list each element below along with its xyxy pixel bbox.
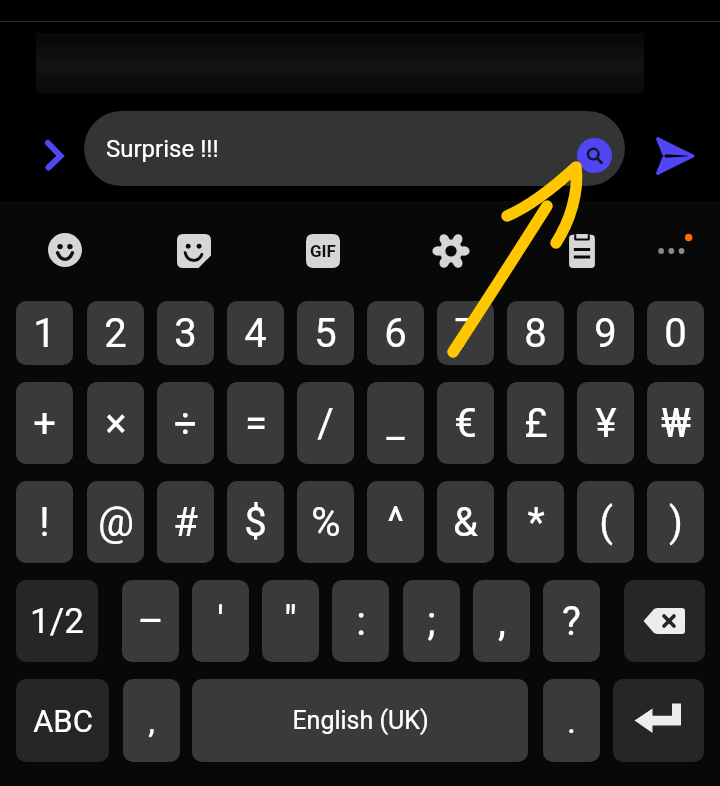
button[interactable]: €	[437, 382, 494, 464]
button[interactable]: _	[367, 382, 424, 464]
button[interactable]: #	[157, 481, 214, 563]
button[interactable]: @	[87, 481, 144, 563]
staticText: ^	[387, 499, 404, 546]
staticText: 0	[664, 310, 687, 357]
button[interactable]: ;	[403, 580, 460, 662]
button[interactable]: ,	[123, 679, 180, 762]
staticText: (	[599, 499, 613, 546]
staticText: English (UK)	[292, 706, 429, 735]
button[interactable]: Clipboard	[557, 226, 607, 276]
button[interactable]: GIF	[298, 226, 348, 276]
staticText: 5	[314, 310, 337, 357]
button[interactable]: 6	[367, 301, 424, 365]
staticText: ,	[498, 598, 506, 645]
staticText: _	[386, 400, 405, 447]
staticText: .	[567, 701, 576, 741]
staticText: £	[524, 400, 548, 447]
staticText: 3	[174, 310, 197, 357]
staticText: ×	[105, 400, 127, 447]
staticText: ¥	[595, 400, 617, 447]
button[interactable]: Settings	[426, 226, 476, 276]
button[interactable]: %	[297, 481, 354, 563]
button[interactable]: ,	[473, 580, 530, 662]
staticText: GIF	[310, 241, 336, 261]
button[interactable]: /	[297, 382, 354, 464]
staticText: ?	[562, 598, 581, 645]
button[interactable]: Expand toolbar	[32, 132, 78, 178]
staticText: %	[311, 499, 341, 546]
staticText: "	[284, 598, 297, 645]
staticText: 6	[384, 310, 407, 357]
button[interactable]: 8	[507, 301, 564, 365]
button[interactable]: Backspace	[624, 580, 705, 662]
staticText: '	[217, 598, 224, 645]
staticText: ABC	[33, 703, 93, 739]
staticText: Surprise !!!	[106, 135, 219, 163]
staticText: #	[173, 499, 198, 546]
button[interactable]: ¥	[577, 382, 634, 464]
button[interactable]: ÷	[157, 382, 214, 464]
staticText: $	[244, 499, 267, 546]
button[interactable]: &	[437, 481, 494, 563]
button[interactable]: English (UK)	[192, 679, 528, 762]
staticText: 1/2	[30, 601, 84, 642]
button[interactable]: Enter	[613, 679, 704, 762]
button[interactable]: :	[332, 580, 389, 662]
staticText: 8	[524, 310, 547, 357]
button[interactable]: .	[543, 679, 600, 762]
button[interactable]: Surprise !!!	[84, 111, 625, 186]
staticText: ₩	[661, 400, 691, 447]
staticText: 1	[33, 310, 56, 357]
staticText: !	[39, 499, 50, 546]
button[interactable]: !	[16, 481, 73, 563]
staticText: 7	[454, 310, 477, 357]
button[interactable]: 5	[297, 301, 354, 365]
button[interactable]: "	[262, 580, 319, 662]
staticText: :	[356, 598, 366, 645]
button[interactable]: ?	[543, 580, 600, 662]
staticText: €	[454, 400, 477, 447]
button[interactable]: ₩	[647, 382, 704, 464]
button[interactable]: Search	[577, 138, 612, 173]
button[interactable]: 1/2	[16, 580, 98, 662]
staticText: ÷	[174, 400, 197, 447]
staticText: *	[527, 499, 545, 546]
button[interactable]: 2	[87, 301, 144, 365]
button[interactable]: ×	[87, 382, 144, 464]
button[interactable]: ^	[367, 481, 424, 563]
button[interactable]: 3	[157, 301, 214, 365]
staticText: 9	[594, 310, 617, 357]
staticText: )	[669, 499, 683, 546]
staticText: 4	[244, 310, 267, 357]
button[interactable]: 4	[227, 301, 284, 365]
button[interactable]: =	[227, 382, 284, 464]
button[interactable]: *	[507, 481, 564, 563]
staticText: @	[98, 499, 134, 546]
button[interactable]: $	[227, 481, 284, 563]
button[interactable]: )	[647, 481, 704, 563]
button[interactable]: –	[122, 580, 179, 662]
staticText: =	[245, 400, 267, 447]
button[interactable]: £	[507, 382, 564, 464]
staticText: /	[317, 400, 334, 447]
button[interactable]: 1	[16, 301, 73, 365]
button[interactable]: '	[192, 580, 249, 662]
button[interactable]: ABC	[16, 679, 109, 762]
staticText: –	[137, 598, 164, 645]
staticText: ;	[427, 598, 436, 645]
button[interactable]: +	[16, 382, 73, 464]
staticText: 2	[104, 310, 127, 357]
button[interactable]: (	[577, 481, 634, 563]
button[interactable]: Stickers	[169, 226, 219, 276]
staticText: ,	[148, 701, 155, 741]
staticText: &	[453, 499, 478, 546]
button[interactable]: 0	[647, 301, 704, 365]
button[interactable]: Send	[650, 130, 702, 182]
button[interactable]: More options	[647, 226, 697, 276]
button[interactable]: 7	[437, 301, 494, 365]
button[interactable]: Emoji	[40, 225, 90, 275]
button[interactable]: 9	[577, 301, 634, 365]
staticText: +	[33, 400, 56, 447]
